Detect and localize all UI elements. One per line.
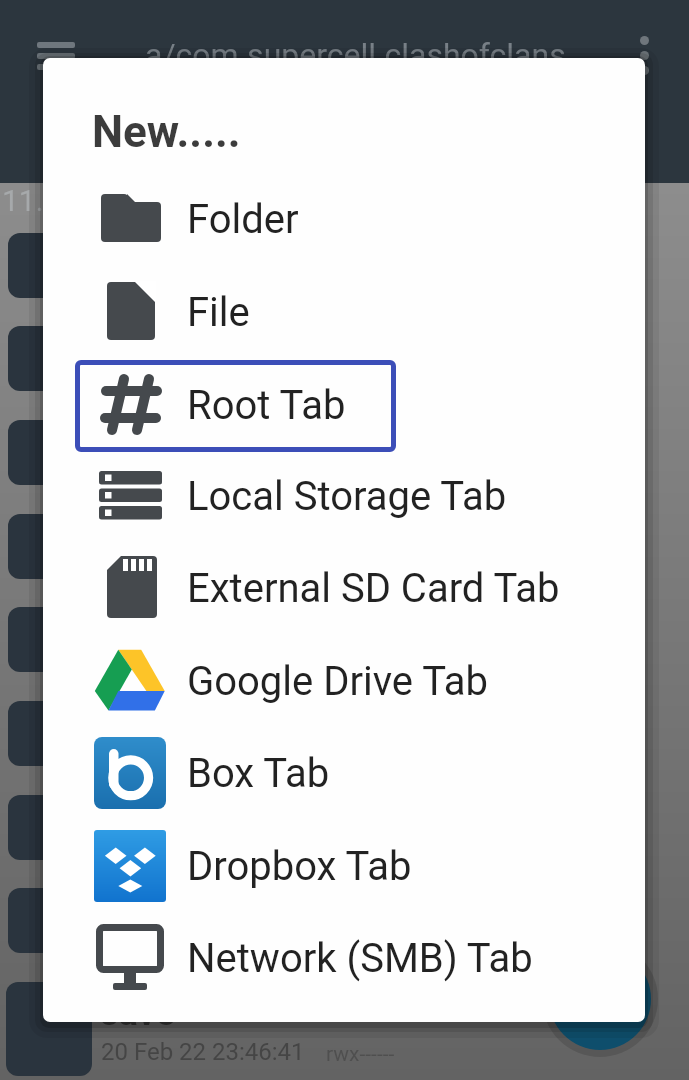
button[interactable] (549, 948, 651, 1050)
staticText: Google Drive Tab (187, 658, 489, 705)
staticText: Network (SMB) Tab (187, 935, 533, 982)
staticText: rwx------ (326, 1042, 395, 1067)
staticText: Local Storage Tab (187, 473, 507, 520)
button[interactable] (63, 359, 625, 451)
staticText: 11.5 (2, 183, 61, 218)
button[interactable] (63, 450, 625, 542)
button[interactable] (630, 31, 660, 81)
button[interactable] (63, 635, 625, 727)
button[interactable] (63, 727, 625, 819)
staticText: a/com.supercell.clashofclans (145, 36, 566, 74)
button[interactable] (63, 912, 625, 1004)
button[interactable] (63, 820, 625, 912)
button[interactable] (63, 266, 625, 358)
staticText: File (187, 289, 250, 336)
staticText: Root Tab (187, 382, 346, 429)
button[interactable] (63, 173, 625, 265)
staticText: New..... (92, 106, 241, 158)
staticText: Folder (187, 196, 299, 243)
staticText: 20 Feb 22 23:46:41 (101, 1038, 305, 1066)
staticText: External SD Card Tab (187, 565, 560, 612)
button[interactable] (30, 36, 82, 76)
button[interactable] (63, 542, 625, 634)
staticText: Dropbox Tab (187, 843, 412, 890)
staticText: Box Tab (187, 750, 330, 797)
staticText: save (100, 992, 176, 1034)
